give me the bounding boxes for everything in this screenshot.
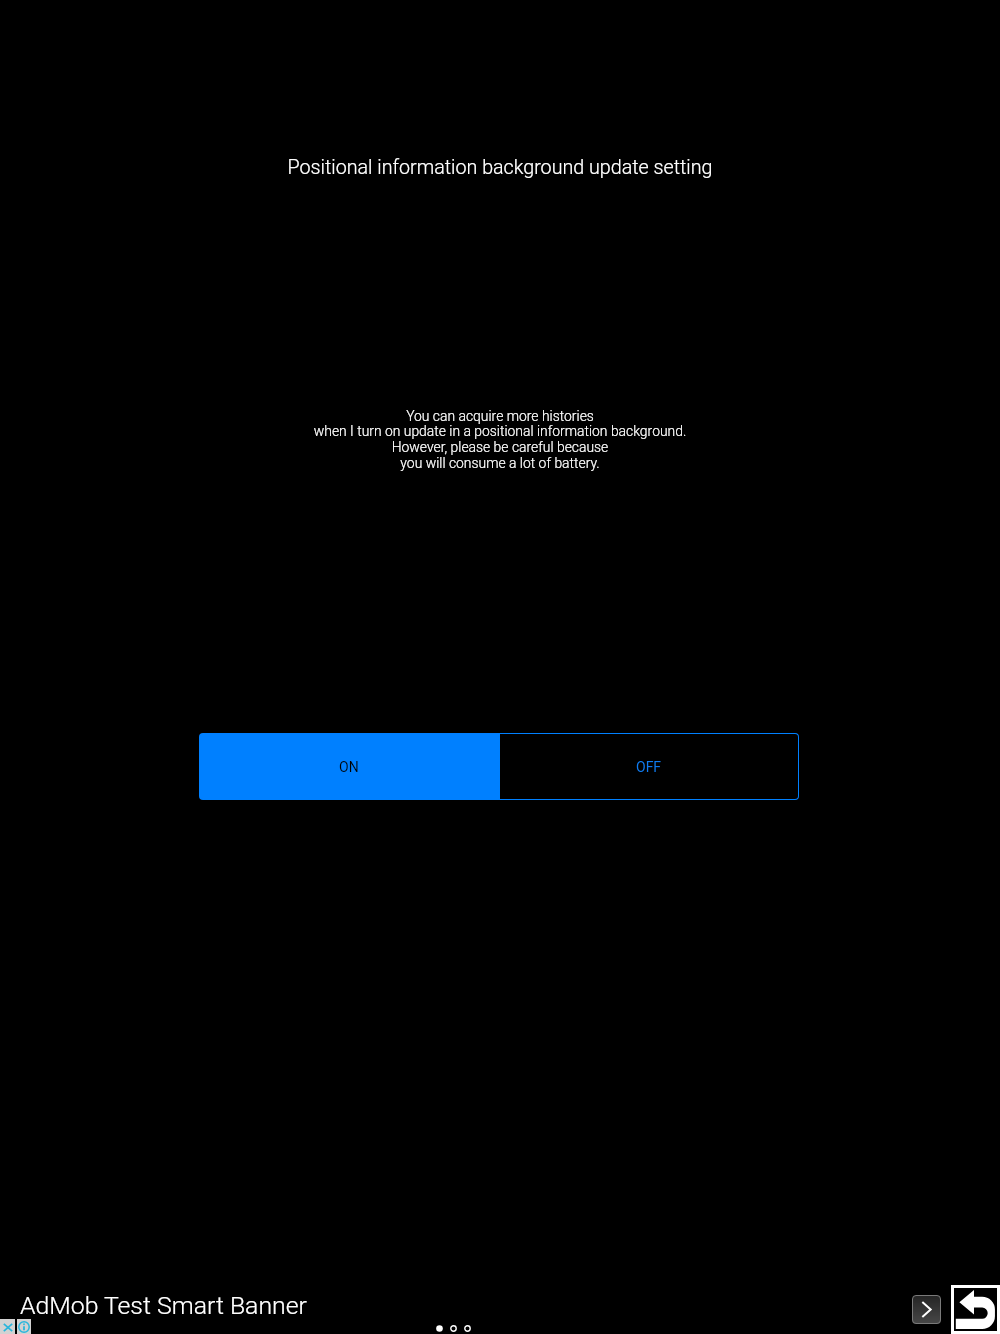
- button[interactable]: Next ad: [912, 1295, 941, 1324]
- button[interactable]: ON: [199, 733, 499, 800]
- button[interactable]: AdMob Test Smart Banner: [0, 1284, 1000, 1334]
- staticText: Positional information background update…: [0, 156, 1000, 179]
- staticText: AdMob Test Smart Banner: [20, 1291, 307, 1320]
- staticText: ON: [339, 759, 359, 775]
- staticText: You can acquire more histories when I tu…: [0, 408, 1000, 472]
- button[interactable]: Close ad: [0, 1319, 15, 1334]
- button[interactable]: Back: [954, 1288, 997, 1331]
- button[interactable]: OFF: [499, 733, 799, 800]
- button[interactable]: Ad information: [17, 1319, 31, 1334]
- staticText: OFF: [636, 759, 662, 775]
